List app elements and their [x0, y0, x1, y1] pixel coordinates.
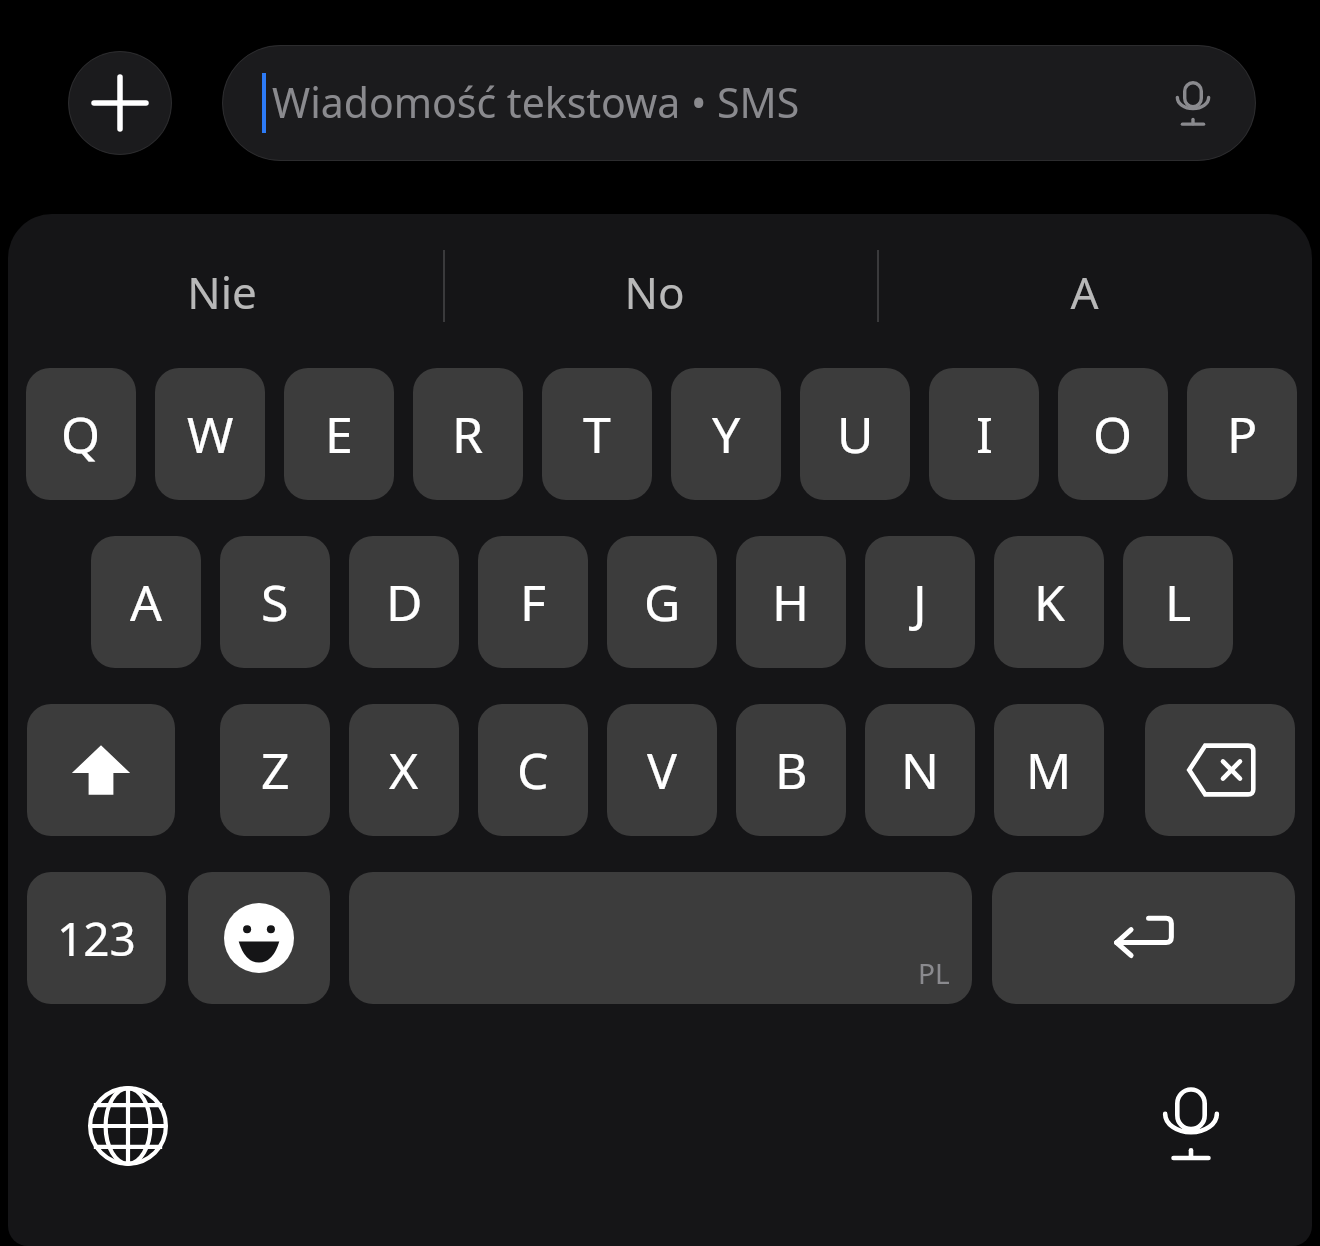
button[interactable]: Q	[26, 368, 136, 500]
button[interactable]: Backspace	[1145, 704, 1295, 836]
staticText: L	[1165, 568, 1192, 636]
staticText: D	[386, 568, 423, 636]
button[interactable]: K	[994, 536, 1104, 668]
staticText: I	[976, 400, 993, 468]
staticText: E	[325, 400, 353, 468]
staticText: A	[1070, 262, 1099, 322]
staticText: Q	[61, 400, 101, 468]
staticText: A	[130, 568, 162, 636]
button[interactable]: Space	[349, 872, 972, 1004]
staticText: J	[913, 568, 927, 636]
staticText: U	[837, 400, 874, 468]
staticText: F	[520, 568, 546, 636]
staticText: H	[772, 568, 810, 636]
button[interactable]: P	[1187, 368, 1297, 500]
staticText: W	[187, 400, 234, 468]
button[interactable]: 123	[27, 872, 166, 1004]
button[interactable]: L	[1123, 536, 1233, 668]
button[interactable]: A	[934, 236, 1234, 348]
button[interactable]: Shift	[27, 704, 175, 836]
button[interactable]: U	[800, 368, 910, 500]
button[interactable]: G	[607, 536, 717, 668]
staticText: G	[644, 568, 681, 636]
button[interactable]: Z	[220, 704, 330, 836]
button[interactable]: Wiadomość tekstowa • SMS	[222, 45, 1256, 161]
button[interactable]: O	[1058, 368, 1168, 500]
button[interactable]: T	[542, 368, 652, 500]
staticText: Y	[712, 400, 741, 468]
staticText: P	[1227, 400, 1258, 468]
button[interactable]: A	[91, 536, 201, 668]
button[interactable]: Y	[671, 368, 781, 500]
button[interactable]: D	[349, 536, 459, 668]
button[interactable]: H	[736, 536, 846, 668]
staticText: K	[1034, 568, 1065, 636]
staticText: 123	[57, 907, 136, 970]
button[interactable]: R	[413, 368, 523, 500]
button[interactable]: M	[994, 704, 1104, 836]
staticText: No	[624, 262, 685, 322]
staticText: PL	[918, 954, 950, 992]
staticText: R	[452, 400, 484, 468]
button[interactable]: No	[504, 236, 804, 348]
button[interactable]: F	[478, 536, 588, 668]
button[interactable]: B	[736, 704, 846, 836]
button[interactable]: J	[865, 536, 975, 668]
staticText: X	[389, 736, 419, 804]
staticText: M	[1026, 736, 1072, 804]
staticText: O	[1093, 400, 1133, 468]
staticText: Z	[261, 736, 290, 804]
staticText: Nie	[187, 262, 257, 322]
button[interactable]: I	[929, 368, 1039, 500]
staticText: S	[261, 568, 289, 636]
button[interactable]: Voice input	[1156, 66, 1230, 140]
button[interactable]: Add attachment	[68, 51, 172, 155]
staticText: N	[901, 736, 939, 804]
button[interactable]: E	[284, 368, 394, 500]
button[interactable]: C	[478, 704, 588, 836]
button[interactable]: Nie	[72, 236, 372, 348]
button[interactable]: W	[155, 368, 265, 500]
button[interactable]: N	[865, 704, 975, 836]
button[interactable]: Change keyboard language	[80, 1078, 176, 1174]
button[interactable]: Emoji	[188, 872, 330, 1004]
staticText: V	[647, 736, 677, 804]
staticText: C	[517, 736, 549, 804]
button[interactable]: Enter	[992, 872, 1295, 1004]
button[interactable]: Voice typing	[1143, 1075, 1239, 1171]
staticText: T	[583, 400, 611, 468]
staticText: Wiadomość tekstowa • SMS	[272, 74, 800, 130]
staticText: B	[775, 736, 808, 804]
button[interactable]: V	[607, 704, 717, 836]
button[interactable]: X	[349, 704, 459, 836]
button[interactable]: S	[220, 536, 330, 668]
